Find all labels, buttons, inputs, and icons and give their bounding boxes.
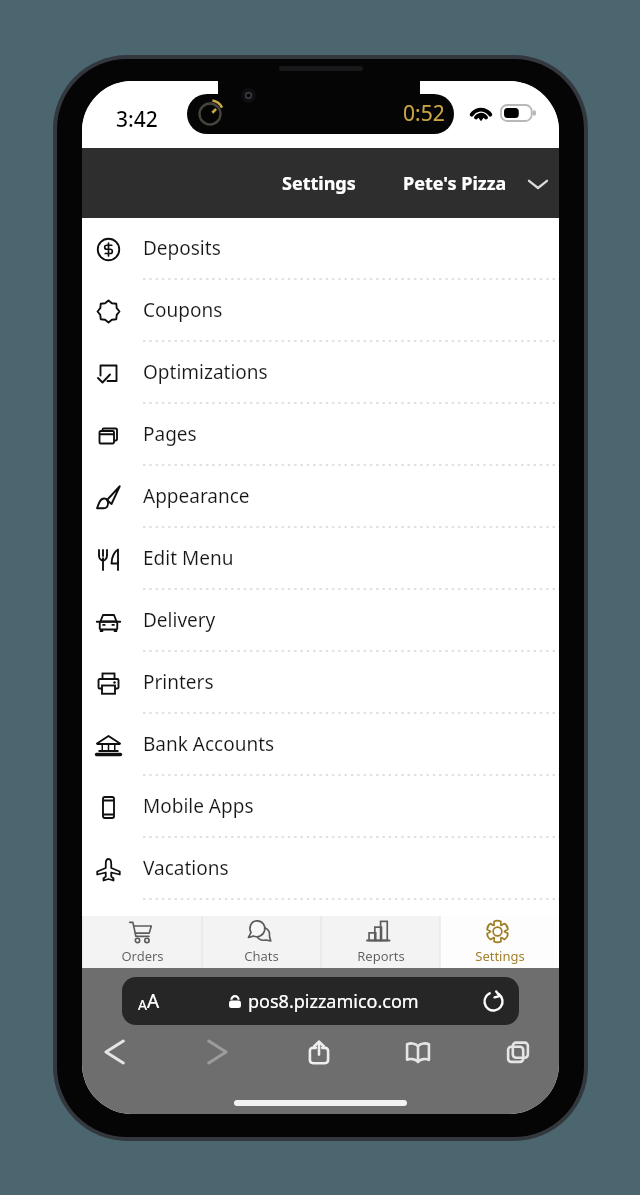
button[interactable]: Printers <box>82 652 559 714</box>
button[interactable]: Delivery <box>82 590 559 652</box>
button[interactable]: Bank Accounts <box>82 714 559 776</box>
staticText: Appearance <box>143 483 250 509</box>
button[interactable]: Deposits <box>82 218 559 280</box>
staticText: Orders <box>121 947 164 965</box>
staticText: Deposits <box>143 235 221 261</box>
button[interactable]: Back <box>93 1033 137 1071</box>
staticText: Bank Accounts <box>143 731 275 757</box>
staticText: Coupons <box>143 297 223 323</box>
button[interactable]: Chats <box>202 916 321 968</box>
button[interactable]: Mobile Apps <box>82 776 559 838</box>
button[interactable]: Edit Menu <box>82 528 559 590</box>
other: Reload <box>483 991 504 1012</box>
button[interactable]: Pages <box>82 404 559 466</box>
button[interactable]: Coupons <box>82 280 559 342</box>
staticText: Delivery <box>143 607 216 633</box>
staticText: Chats <box>244 947 279 965</box>
button[interactable]: Settings <box>282 171 356 196</box>
button[interactable]: Orders <box>82 916 202 968</box>
staticText: Pages <box>143 421 197 447</box>
staticText: 0:52 <box>403 99 445 128</box>
staticText: pos8.pizzamico.com <box>248 989 419 1014</box>
button[interactable]: Vacations <box>82 838 559 900</box>
button[interactable]: A <box>122 977 519 1025</box>
button[interactable]: Optimizations <box>82 342 559 404</box>
staticText: Pete's Pizza <box>403 171 507 196</box>
staticText: Settings <box>475 947 525 965</box>
staticText: Reports <box>357 947 405 965</box>
button[interactable]: Appearance <box>82 466 559 528</box>
staticText: 3:42 <box>116 105 158 134</box>
button[interactable]: Reports <box>321 916 440 968</box>
staticText: Optimizations <box>143 359 268 385</box>
staticText: A <box>147 988 160 1014</box>
button[interactable]: Forward <box>195 1033 239 1071</box>
staticText: A <box>138 995 147 1014</box>
staticText: Edit Menu <box>143 545 234 571</box>
button[interactable]: Tabs <box>496 1033 540 1071</box>
button[interactable]: Share <box>297 1033 341 1071</box>
staticText: Printers <box>143 669 214 695</box>
button[interactable]: Bookmarks <box>396 1033 440 1071</box>
staticText: Mobile Apps <box>143 793 254 819</box>
button[interactable]: Pete's Pizza <box>403 171 547 196</box>
staticText: Vacations <box>143 855 229 881</box>
button[interactable]: Settings <box>440 916 559 968</box>
